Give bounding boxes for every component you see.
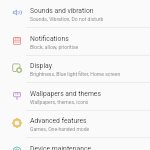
- button[interactable]: Sounds and vibration: [0, 0, 150, 28]
- staticText: Wallpapers, themes, icons: [30, 99, 89, 105]
- staticText: Device maintenance: [30, 145, 92, 150]
- button[interactable]: Wallpapers and themes: [0, 83, 150, 111]
- button[interactable]: Device maintenance: [0, 138, 150, 150]
- button[interactable]: Notifications: [0, 28, 150, 56]
- staticText: Wallpapers and themes: [30, 90, 101, 98]
- staticText: Notifications: [30, 35, 69, 43]
- button[interactable]: Display: [0, 55, 150, 83]
- staticText: Block, allow, prioritise: [30, 44, 79, 50]
- button[interactable]: Advanced features: [0, 110, 150, 138]
- staticText: Display: [30, 62, 52, 70]
- staticText: Advanced features: [30, 117, 87, 125]
- staticText: Games, One-handed mode: [30, 126, 90, 132]
- staticText: Sounds, Vibration, Do not disturb: [30, 16, 104, 22]
- staticText: Brightness, Blue light filter, Home scre…: [30, 71, 121, 77]
- staticText: Sounds and vibration: [30, 7, 94, 15]
